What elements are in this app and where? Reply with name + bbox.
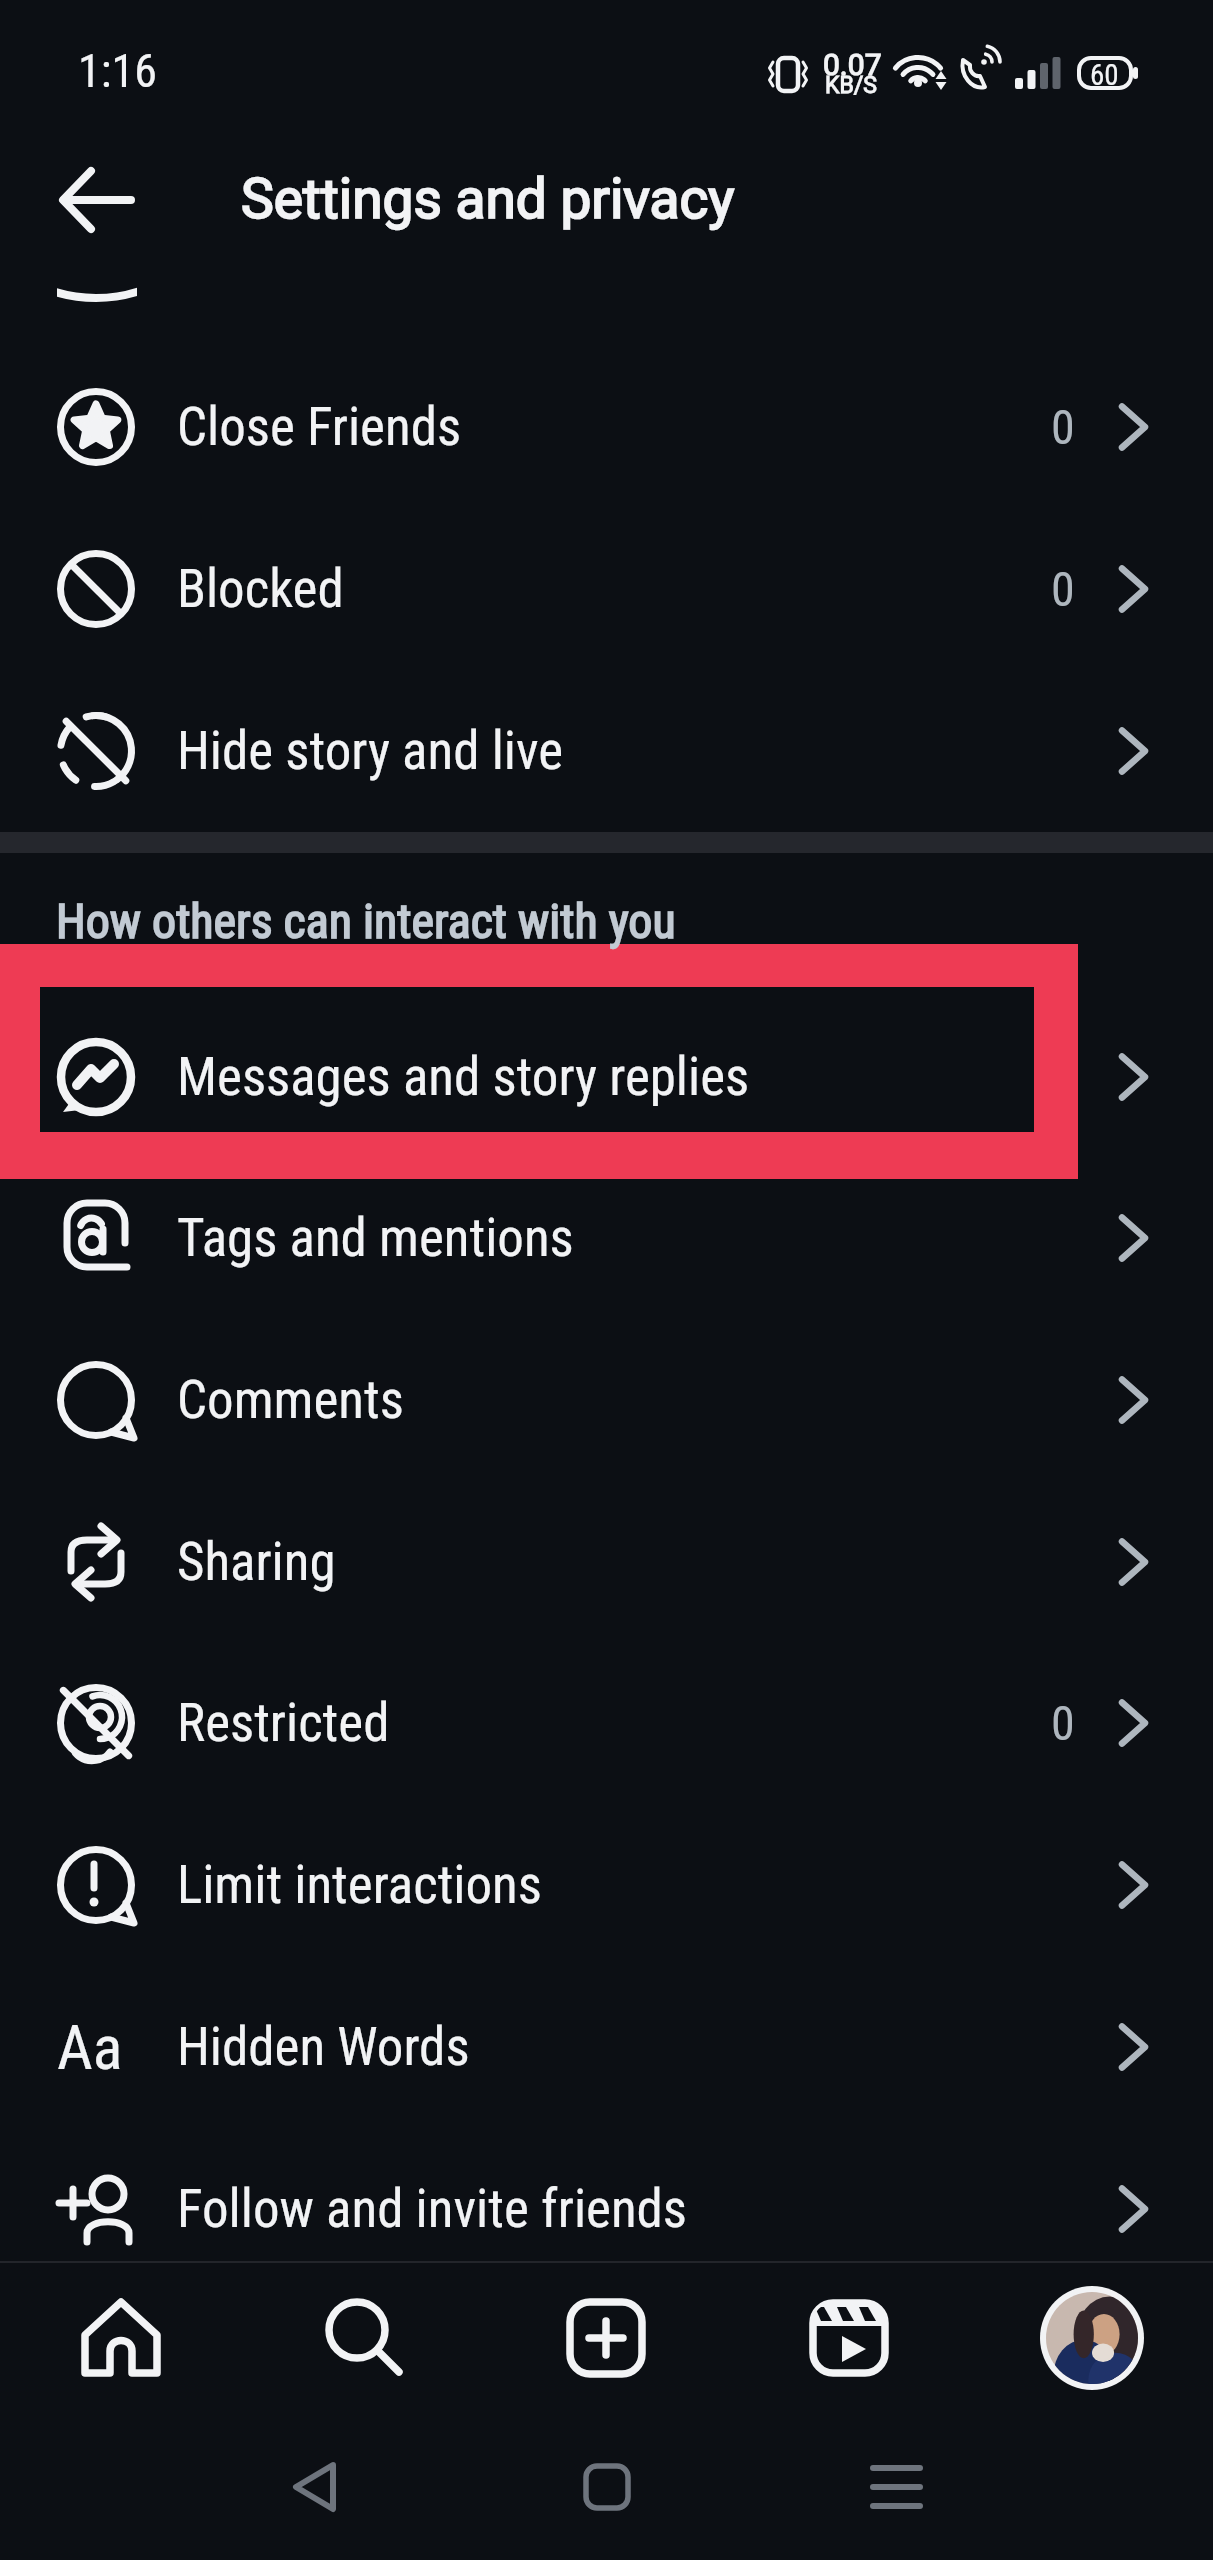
button[interactable]: Back [27,154,167,246]
button[interactable]: Profile [970,2260,1213,2415]
button[interactable]: Restricted [0,1642,1213,1804]
button[interactable]: Limit interactions [0,1804,1213,1966]
button[interactable]: Tags and mentions [0,1157,1213,1319]
button[interactable]: Home [547,2430,667,2550]
staticText: 1:16 [78,44,157,98]
button[interactable]: Aa [0,1966,1213,2128]
staticText: Messages and story replies [177,1046,750,1108]
staticText: KB/S [825,72,877,99]
staticText: Hidden Words [177,2016,470,2078]
button[interactable]: Sharing [0,1481,1213,1643]
button[interactable]: Hide story and live [0,670,1213,832]
staticText: Settings and privacy [241,167,735,231]
button[interactable]: Close Friends [0,346,1213,508]
staticText: 0 [1051,399,1075,455]
button[interactable]: Create [484,2260,727,2415]
button[interactable]: Back [255,2430,375,2550]
button[interactable]: Recent apps [837,2430,957,2550]
staticText: Hide story and live [177,720,564,782]
staticText: How others can interact with you [56,893,676,949]
staticText: Close Friends [177,396,462,458]
staticText: Aa [57,2011,123,2084]
button[interactable]: Messages and story replies [0,996,1213,1158]
button[interactable]: Home [0,2260,242,2415]
staticText: 0 [1051,561,1075,617]
staticText: Comments [177,1369,404,1431]
staticText: Blocked [177,558,344,620]
staticText: Limit interactions [177,1854,542,1916]
button[interactable]: Reels [727,2260,970,2415]
staticText: Tags and mentions [177,1207,574,1269]
staticText: 60 [1090,58,1119,92]
staticText: 0.07 [823,47,882,82]
staticText: 0 [1051,1695,1075,1751]
staticText: Sharing [177,1531,336,1593]
button[interactable]: Follow and invite friends [0,2128,1213,2290]
staticText: Follow and invite friends [177,2178,688,2240]
button[interactable]: Comments [0,1319,1213,1481]
button[interactable]: Search [242,2260,484,2415]
button[interactable]: Blocked [0,508,1213,670]
staticText: Restricted [177,1692,390,1754]
